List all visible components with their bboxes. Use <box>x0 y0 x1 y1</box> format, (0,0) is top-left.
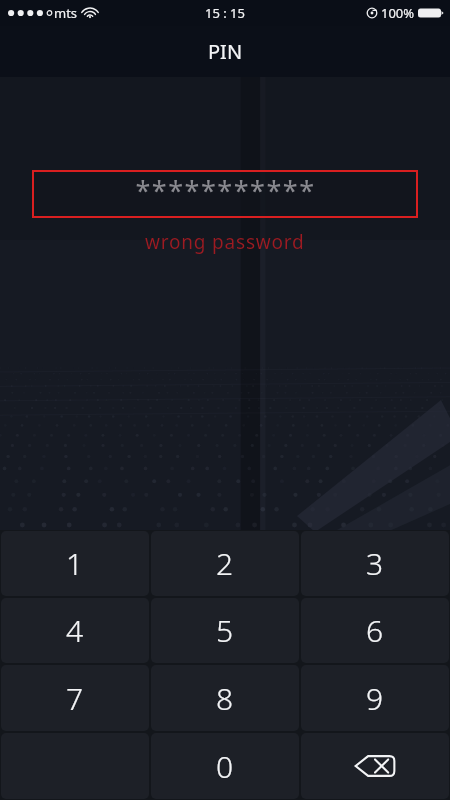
staticText: wrong password <box>145 229 305 255</box>
staticText: 0 <box>216 746 234 787</box>
staticText: *********** <box>135 172 316 209</box>
staticText: 5 <box>216 610 234 651</box>
staticText: 4 <box>66 610 84 651</box>
staticText: 9 <box>366 678 384 719</box>
staticText: 3 <box>366 543 384 584</box>
staticText: 1 <box>66 543 84 584</box>
staticText: 15 : 15 <box>205 4 245 22</box>
button[interactable]: 7 <box>1 665 149 731</box>
button[interactable]: *********** <box>32 170 418 218</box>
staticText: 6 <box>366 610 384 651</box>
button[interactable]: 8 <box>151 665 299 731</box>
button[interactable]: 3 <box>301 531 449 596</box>
button[interactable]: 5 <box>151 598 299 663</box>
staticText: 8 <box>216 678 234 719</box>
staticText: mts <box>54 4 78 22</box>
button[interactable]: 4 <box>1 598 149 663</box>
staticText: 7 <box>66 678 84 719</box>
button[interactable]: 9 <box>301 665 449 731</box>
button[interactable]: 0 <box>151 733 299 799</box>
staticText: 2 <box>216 543 234 584</box>
staticText: PIN <box>208 38 243 65</box>
button[interactable]: 6 <box>301 598 449 663</box>
button[interactable]: 1 <box>1 531 149 596</box>
staticText: 100% <box>381 4 415 22</box>
button[interactable]: Backspace <box>301 733 449 799</box>
button[interactable]: 2 <box>151 531 299 596</box>
